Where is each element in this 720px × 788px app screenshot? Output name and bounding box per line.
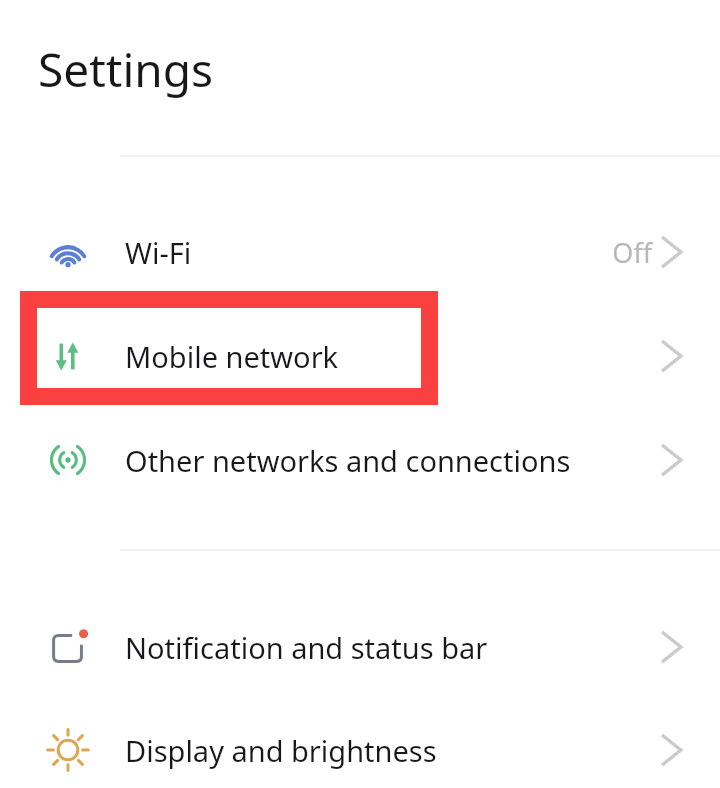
- staticText: Off: [612, 234, 652, 271]
- button[interactable]: Notification and status bar: [0, 607, 720, 687]
- other: Open Display and brightness: [660, 736, 682, 764]
- other: Open Notification and status bar: [660, 633, 682, 661]
- button[interactable]: Other networks and connections: [0, 420, 720, 500]
- other: Open Other networks and connections: [660, 446, 682, 474]
- button[interactable]: Mobile network: [0, 316, 720, 396]
- staticText: Wi-Fi: [125, 233, 192, 272]
- staticText: Display and brightness: [125, 731, 437, 770]
- staticText: Mobile network: [125, 337, 339, 376]
- staticText: Notification and status bar: [125, 628, 488, 667]
- staticText: Settings: [38, 38, 214, 100]
- other: Open Wi-Fi: [660, 238, 682, 266]
- staticText: Other networks and connections: [125, 441, 571, 480]
- button[interactable]: Display and brightness: [0, 710, 720, 788]
- other: Open Mobile network: [660, 342, 682, 370]
- button[interactable]: Wi-Fi: [0, 212, 720, 292]
